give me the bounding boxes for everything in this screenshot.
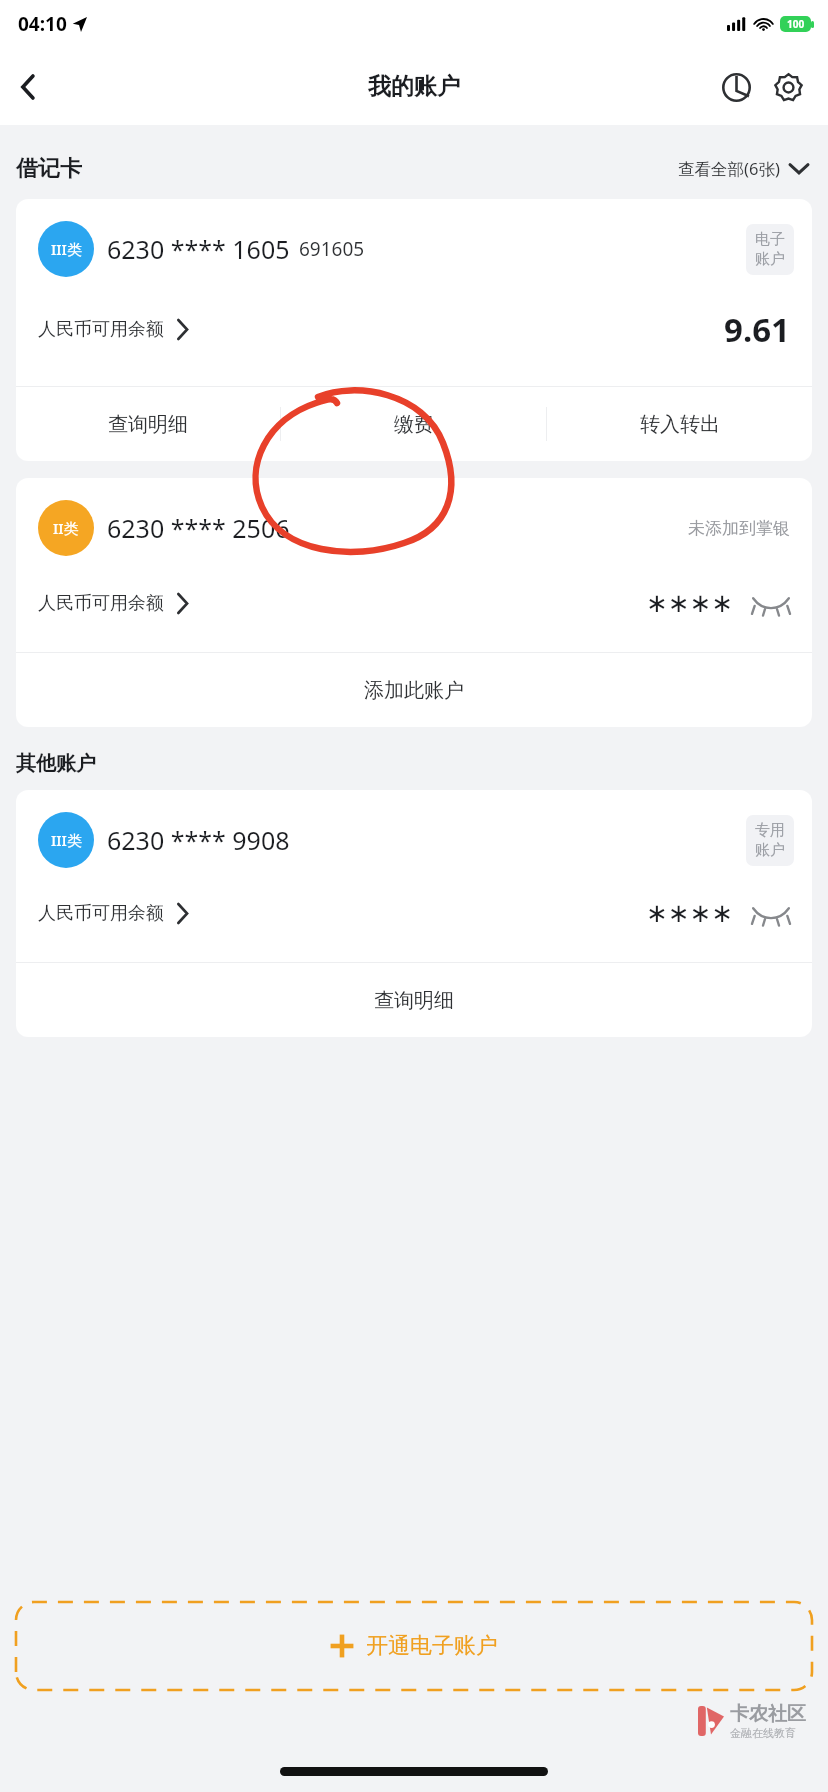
staticText: 04:10 xyxy=(18,11,67,37)
button[interactable]: Show balance xyxy=(752,901,790,925)
button[interactable]: Settings xyxy=(762,61,814,113)
button[interactable]: Show balance xyxy=(752,591,790,615)
button[interactable]: 开通电子账户 xyxy=(16,1602,812,1690)
staticText: 卡农社区 xyxy=(730,1702,806,1726)
button[interactable]: 转入转出 xyxy=(547,387,812,461)
staticText: 转入转出 xyxy=(640,412,720,437)
staticText: 借记卡 xyxy=(16,155,82,183)
button[interactable]: 人民币可用余额 xyxy=(38,902,188,925)
staticText: 691605 xyxy=(299,236,365,262)
button[interactable]: 查询明细 xyxy=(16,963,812,1037)
staticText: 添加此账户 xyxy=(364,678,464,703)
button[interactable]: 查看全部(6张) xyxy=(674,151,812,186)
staticText: 电子 xyxy=(755,230,785,249)
button[interactable]: 添加此账户 xyxy=(16,653,812,727)
staticText: 9.61 xyxy=(724,307,790,352)
staticText: 查看全部(6张) xyxy=(678,157,780,180)
staticText: ∗∗∗∗ xyxy=(646,588,734,618)
staticText: III类 xyxy=(51,830,82,850)
button[interactable]: 缴费 xyxy=(281,387,546,461)
staticText: 人民币可用余额 xyxy=(38,902,164,925)
staticText: 专用 xyxy=(755,821,785,840)
staticText: 人民币可用余额 xyxy=(38,318,164,341)
staticText: III类 xyxy=(51,239,82,259)
staticText: 账户 xyxy=(755,250,785,269)
button[interactable]: III类 xyxy=(16,790,812,1037)
staticText: ∗∗∗∗ xyxy=(646,898,734,928)
staticText: 未添加到掌银 xyxy=(688,518,790,539)
button[interactable]: 人民币可用余额 xyxy=(38,592,188,615)
staticText: 查询明细 xyxy=(108,412,188,437)
staticText: 6230 **** 2506 xyxy=(107,511,290,545)
button[interactable]: III类 xyxy=(16,199,812,461)
staticText: 6230 **** 9908 xyxy=(107,823,290,857)
button[interactable]: 查询明细 xyxy=(16,387,280,461)
staticText: 其他账户 xyxy=(16,751,96,776)
staticText: 账户 xyxy=(755,841,785,860)
button[interactable]: Back xyxy=(0,58,58,116)
button[interactable]: Statistics xyxy=(710,61,762,113)
staticText: 100 xyxy=(787,17,805,31)
button[interactable]: II类 xyxy=(16,478,812,727)
staticText: 金融在线教育 xyxy=(730,1726,796,1740)
staticText: 6230 **** 1605 xyxy=(107,232,290,266)
staticText: 人民币可用余额 xyxy=(38,592,164,615)
staticText: 查询明细 xyxy=(374,988,454,1013)
staticText: 我的账户 xyxy=(368,72,460,101)
staticText: 开通电子账户 xyxy=(366,1632,498,1660)
staticText: II类 xyxy=(53,518,79,538)
staticText: 缴费 xyxy=(394,412,434,437)
button[interactable]: 人民币可用余额 xyxy=(38,318,188,341)
